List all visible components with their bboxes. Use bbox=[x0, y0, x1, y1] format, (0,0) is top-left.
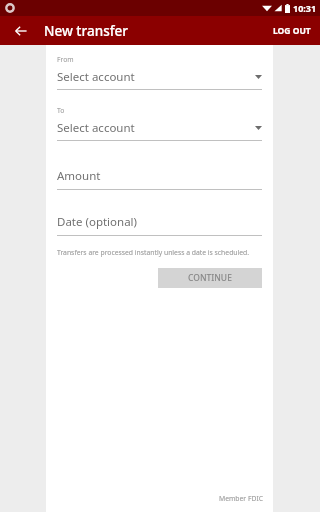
button[interactable]: LOG OUT bbox=[264, 18, 320, 44]
staticText: To bbox=[57, 106, 65, 115]
staticText: Amount bbox=[57, 168, 101, 184]
button[interactable]: To bbox=[57, 106, 262, 141]
staticText: Date (optional) bbox=[57, 214, 138, 230]
button[interactable]: Back bbox=[9, 19, 33, 43]
staticText: 10:31 bbox=[293, 2, 317, 14]
button[interactable]: CONTINUE bbox=[158, 268, 262, 288]
button[interactable]: From bbox=[57, 55, 262, 90]
staticText: Transfers are processed instantly unless… bbox=[57, 248, 250, 257]
staticText: CONTINUE bbox=[188, 272, 232, 284]
button[interactable]: Date (optional) bbox=[57, 214, 262, 236]
staticText: Select account bbox=[57, 120, 255, 136]
staticText: From bbox=[57, 55, 74, 64]
staticText: Member FDIC bbox=[219, 494, 264, 503]
button[interactable]: Amount bbox=[57, 168, 262, 190]
staticText: LOG OUT bbox=[273, 25, 311, 37]
staticText: Select account bbox=[57, 69, 255, 85]
staticText: New transfer bbox=[44, 22, 128, 40]
